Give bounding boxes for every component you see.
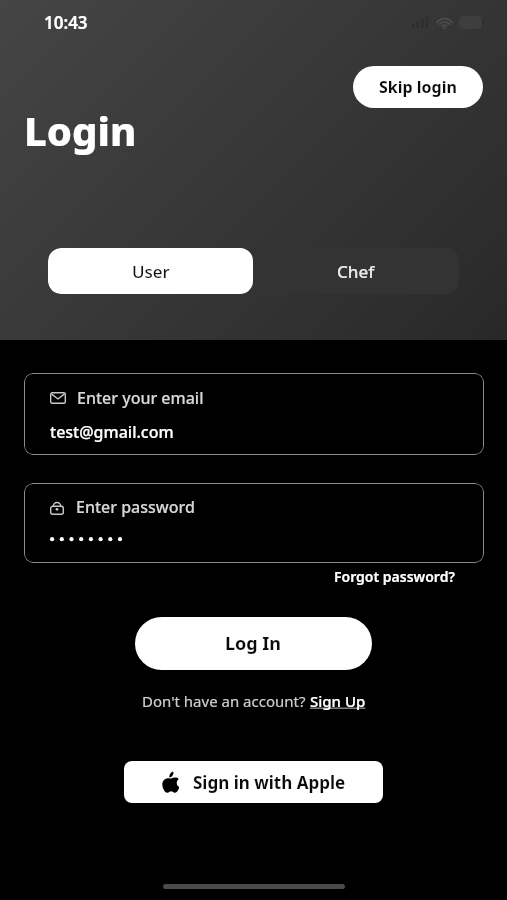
staticText: Forgot password? — [334, 567, 455, 586]
button[interactable]: Apple logo — [124, 761, 383, 803]
staticText: Log In — [225, 631, 282, 656]
other: Apple logo — [161, 771, 180, 793]
staticText: Chef — [337, 260, 375, 283]
staticText: Sign in with Apple — [193, 771, 346, 794]
staticText: User — [132, 260, 170, 283]
staticText: Enter password — [76, 496, 195, 518]
staticText: 10:43 — [44, 11, 88, 34]
button[interactable]: Enter password — [24, 483, 484, 563]
button[interactable]: Enter your email — [24, 373, 484, 455]
button[interactable]: Skip login — [353, 66, 483, 108]
button[interactable]: Log In — [135, 617, 372, 670]
staticText: Login — [24, 103, 137, 157]
button[interactable]: Forgot password? — [330, 565, 459, 588]
button[interactable]: Chef — [253, 248, 459, 294]
staticText: Don't have an account? — [142, 691, 310, 711]
staticText: Skip login — [379, 76, 457, 98]
staticText: Sign Up — [310, 691, 366, 711]
staticText: test@gmail.com — [50, 421, 174, 443]
button[interactable]: Sign Up — [310, 691, 366, 711]
button[interactable]: User — [48, 248, 253, 294]
staticText: Enter your email — [77, 387, 204, 409]
